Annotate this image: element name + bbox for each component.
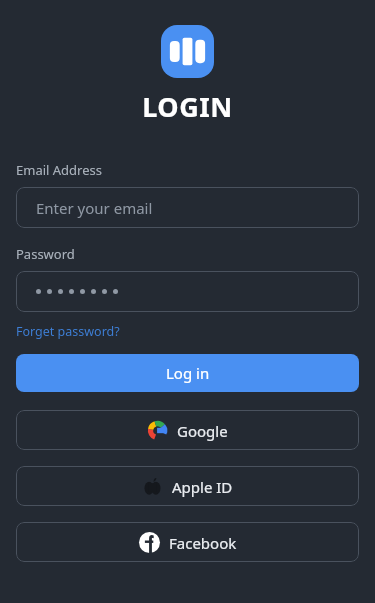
- button[interactable]: Facebook: [16, 522, 359, 562]
- staticText: Log in: [166, 363, 210, 383]
- staticText: Password: [16, 245, 75, 263]
- button[interactable]: Forget password?: [16, 323, 120, 340]
- button[interactable]: Enter your email: [16, 187, 359, 228]
- staticText: Apple ID: [172, 477, 233, 497]
- staticText: LOGIN: [142, 88, 233, 125]
- staticText: Google: [177, 421, 228, 441]
- button[interactable]: App logo: [161, 25, 214, 78]
- staticText: Enter your email: [36, 198, 153, 218]
- staticText: Email Address: [16, 161, 102, 179]
- staticText: Forget password?: [16, 323, 120, 340]
- button[interactable]: [16, 271, 359, 312]
- button[interactable]: Google: [16, 410, 359, 450]
- staticText: Facebook: [169, 533, 237, 553]
- button[interactable]: Log in: [16, 354, 359, 392]
- button[interactable]: Apple ID: [16, 466, 359, 506]
